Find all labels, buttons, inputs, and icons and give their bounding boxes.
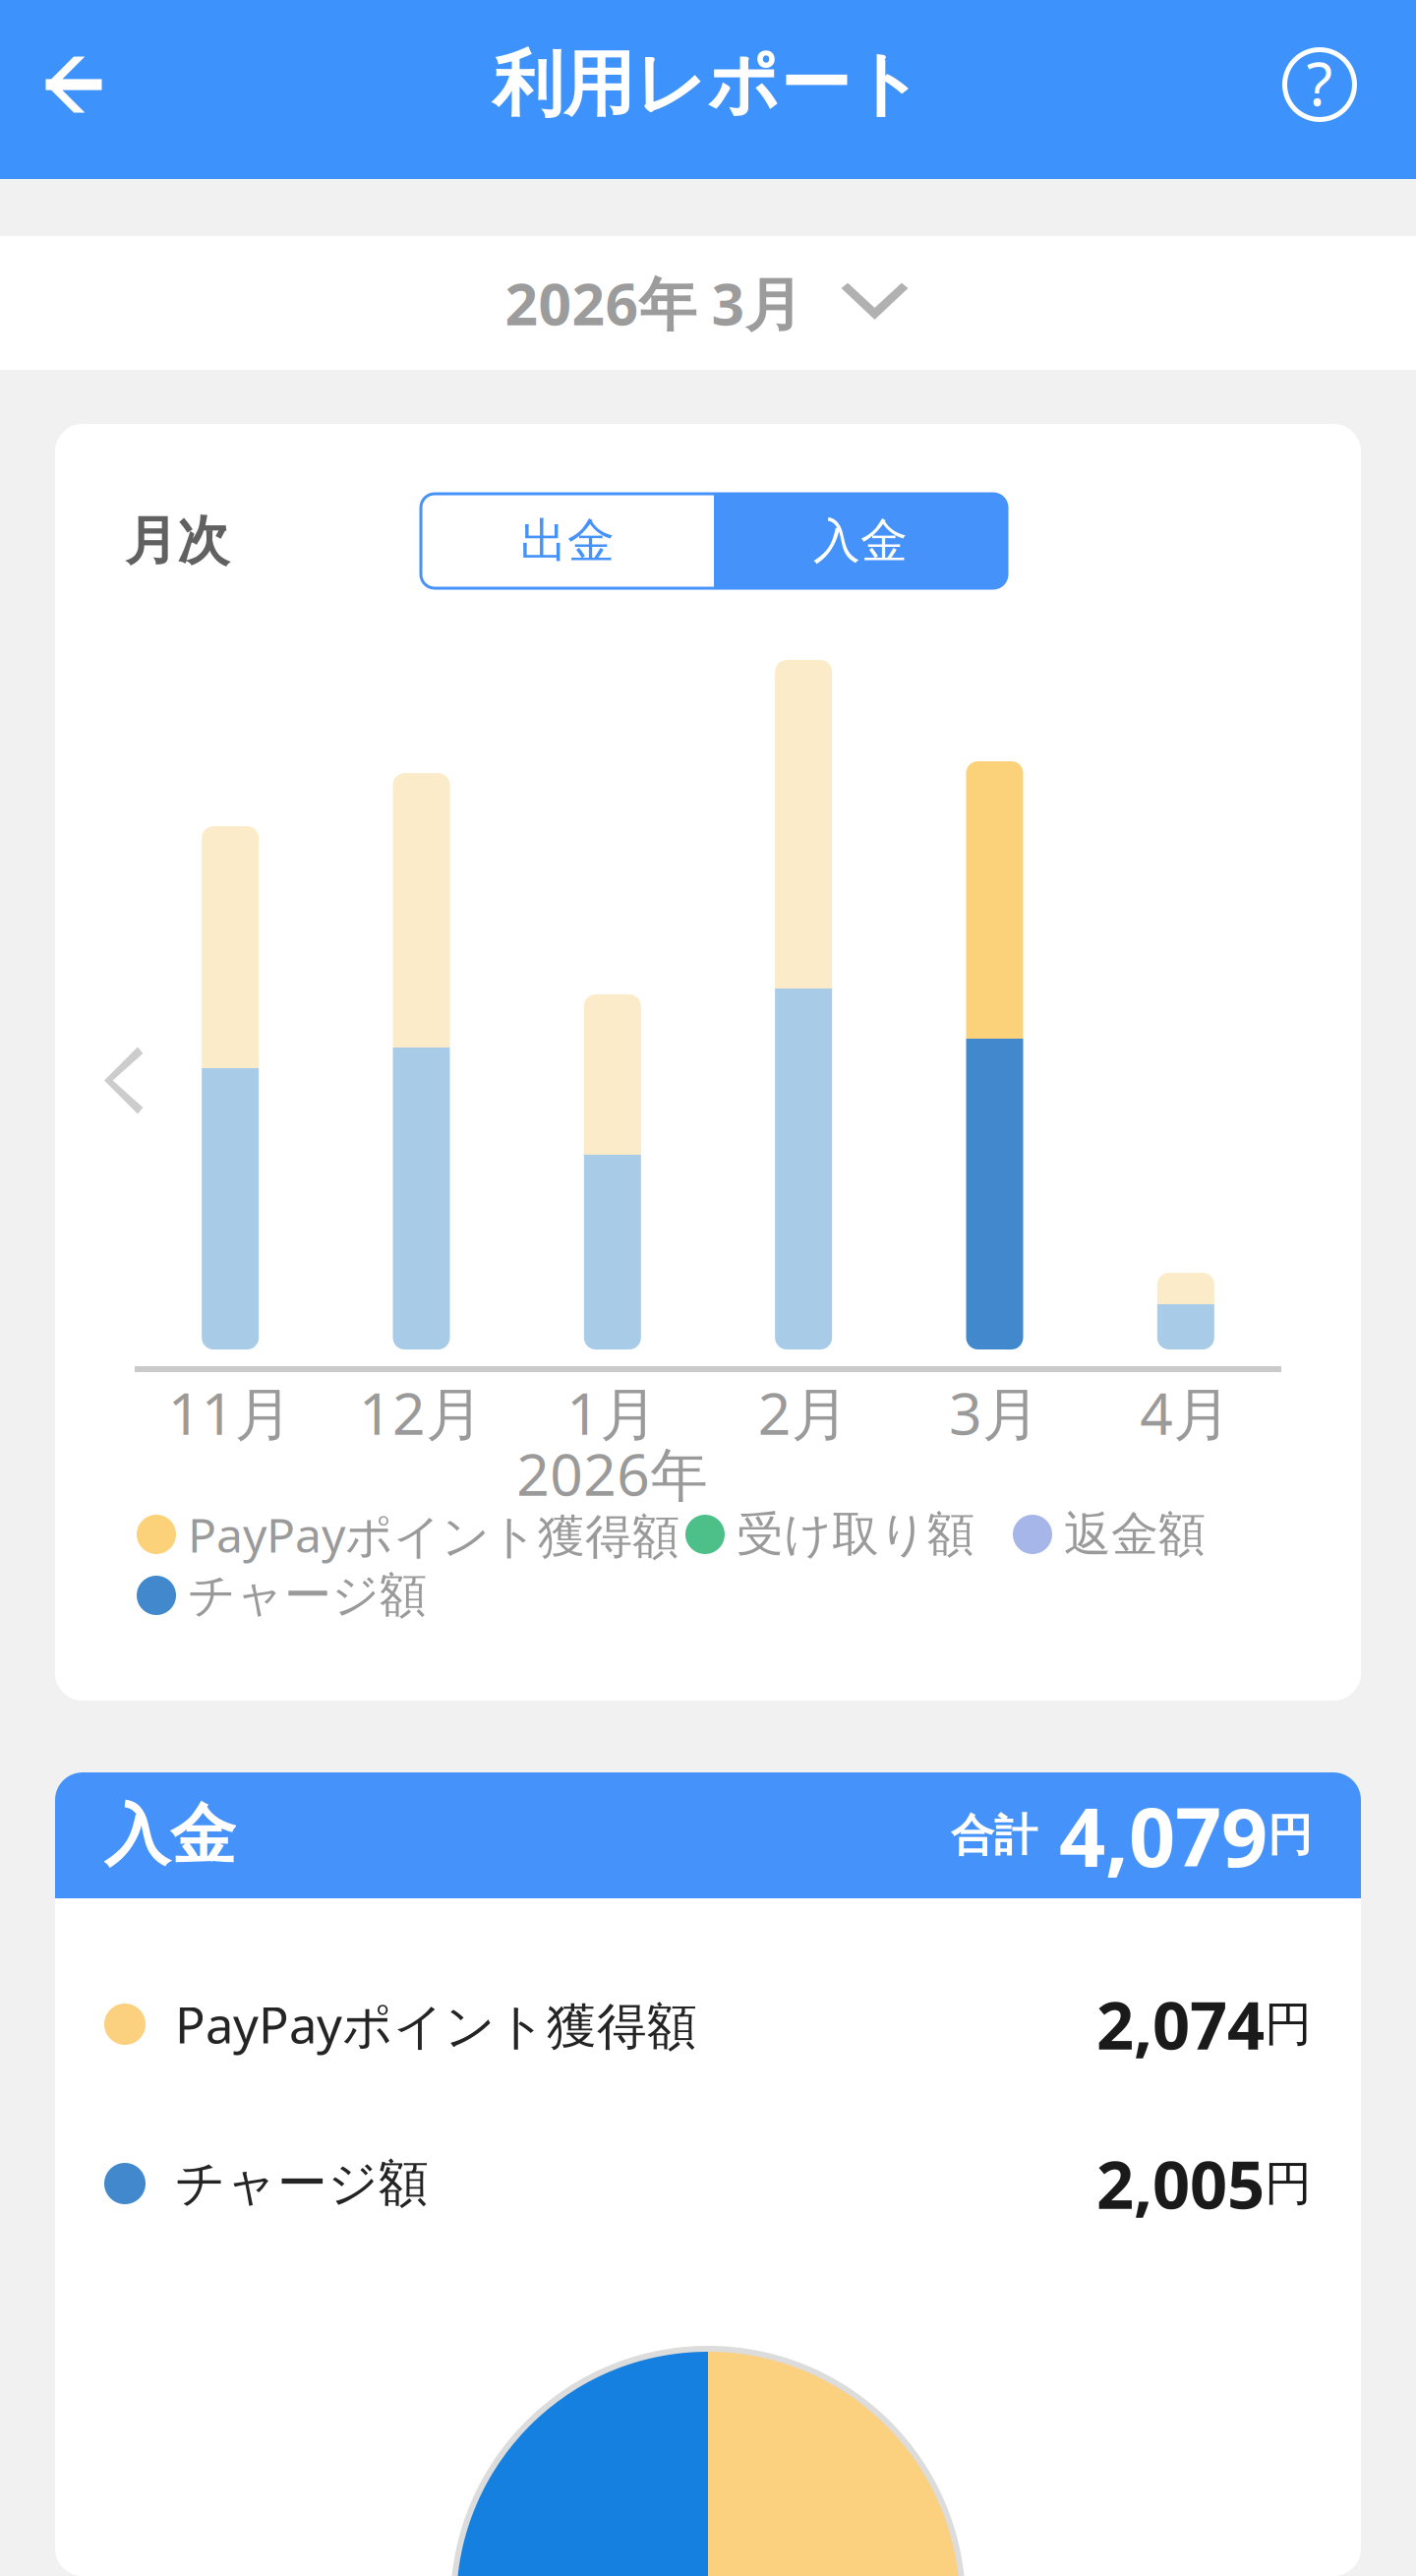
button[interactable]: ヘルプ	[1246, 0, 1416, 179]
button[interactable]: 入金	[714, 494, 1007, 588]
staticText: ?	[1306, 43, 1333, 123]
staticText: 入金	[813, 512, 908, 570]
staticText: 2,005	[1096, 2140, 1265, 2227]
staticText: 2月	[758, 1374, 849, 1451]
button[interactable]: PayPayポイント獲得額	[55, 1945, 1361, 2104]
staticText: チャージ額	[175, 2153, 429, 2214]
staticText: 4月	[1140, 1374, 1231, 1451]
staticText: 4,079	[1059, 1781, 1268, 1889]
staticText: 12月	[359, 1374, 484, 1451]
staticText: 1月	[567, 1374, 658, 1451]
staticText: PayPayポイント獲得額	[175, 1991, 697, 2057]
staticText: 出金	[520, 512, 615, 570]
staticText: PayPayポイント獲得額	[188, 1503, 679, 1566]
staticText: 受け取り額	[737, 1505, 974, 1563]
button[interactable]: チャージ額	[55, 2104, 1361, 2263]
staticText: 円	[1265, 2155, 1312, 2213]
button[interactable]: 出金	[421, 494, 714, 588]
staticText: 合計	[951, 1809, 1037, 1862]
staticText: 3月	[949, 1374, 1040, 1451]
staticText: 入金	[104, 1795, 236, 1876]
staticText: 月次	[125, 509, 229, 573]
staticText: 11月	[168, 1374, 293, 1451]
staticText: 円	[1268, 1808, 1312, 1863]
staticText: 円	[1265, 1995, 1312, 2053]
button[interactable]: 戻る	[0, 0, 147, 179]
staticText: 2026年	[517, 1435, 708, 1512]
staticText: 返金額	[1064, 1505, 1206, 1563]
staticText: 2,074	[1096, 1981, 1265, 2068]
staticText: 利用レポート	[493, 41, 923, 128]
staticText: チャージ額	[188, 1566, 427, 1624]
button[interactable]: 2026年 3月	[0, 236, 1416, 370]
staticText: 2026年 3月	[505, 265, 803, 341]
